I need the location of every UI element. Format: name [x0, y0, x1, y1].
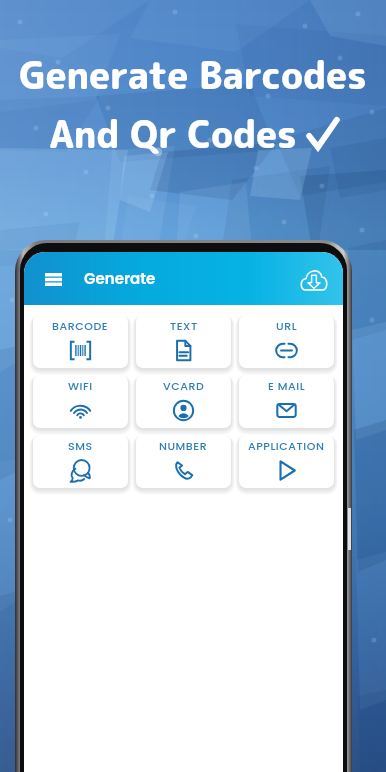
button[interactable]: URL: [239, 315, 334, 368]
staticText: VCARD: [163, 378, 205, 393]
button[interactable]: E MAIL: [239, 375, 334, 428]
staticText: TEXT: [170, 318, 198, 333]
staticText: BARCODE: [52, 318, 109, 333]
staticText: APPLICATION: [248, 438, 325, 453]
staticText: NUMBER: [159, 438, 208, 453]
button[interactable]: TEXT: [136, 315, 231, 368]
staticText: URL: [276, 318, 298, 333]
button[interactable]: BARCODE: [33, 315, 128, 368]
button[interactable]: NUMBER: [136, 435, 231, 488]
staticText: WIFI: [68, 378, 93, 393]
staticText: Generate: [84, 268, 156, 289]
staticText: SMS: [68, 438, 93, 453]
button[interactable]: Menu: [36, 262, 70, 296]
button[interactable]: VCARD: [136, 375, 231, 428]
button[interactable]: SMS: [33, 435, 128, 488]
staticText: Generate Barcodes: [19, 49, 367, 101]
button[interactable]: APPLICATION: [239, 435, 334, 488]
button[interactable]: Download: [295, 260, 333, 298]
staticText: E MAIL: [268, 378, 306, 393]
button[interactable]: WIFI: [33, 375, 128, 428]
staticText: And Qr Codes: [49, 108, 297, 160]
